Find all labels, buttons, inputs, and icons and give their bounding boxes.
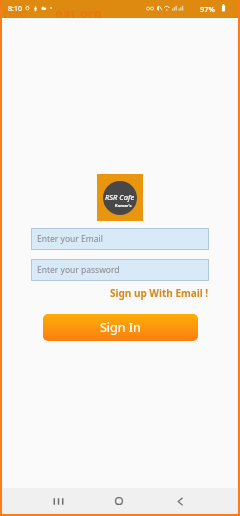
staticText: 97% <box>200 4 215 14</box>
button[interactable]: Enter your Email <box>31 228 209 250</box>
staticText: hac <box>3 4 26 22</box>
staticText: Enter your password <box>37 264 120 276</box>
button[interactable]: Sign up With Email ! <box>110 286 209 300</box>
staticText: Enter your Email <box>37 233 103 245</box>
staticText: 8:10 <box>8 4 22 14</box>
button[interactable]: Sign In <box>43 314 198 341</box>
button[interactable]: Recent apps <box>43 488 73 514</box>
button[interactable]: Enter your password <box>31 259 209 281</box>
staticText: RSR Cafe <box>105 192 135 202</box>
button[interactable]: Back <box>165 488 195 514</box>
staticText: eat.org <box>55 4 102 22</box>
staticText: Sign In <box>100 319 141 336</box>
button[interactable]: Home <box>104 488 134 514</box>
staticText: Kumar's <box>115 203 132 208</box>
